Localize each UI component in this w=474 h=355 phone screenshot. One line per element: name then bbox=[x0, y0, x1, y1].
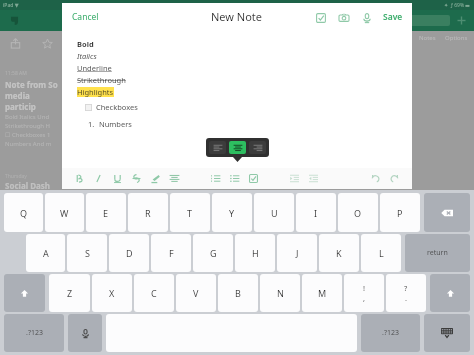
button[interactable]: I bbox=[296, 193, 336, 232]
button[interactable]: Checklist bbox=[244, 168, 263, 189]
button[interactable]: Outdent bbox=[304, 168, 323, 189]
staticText: Z bbox=[67, 287, 73, 299]
staticText: , bbox=[363, 293, 366, 303]
button[interactable]: Numbered list bbox=[206, 168, 225, 189]
staticText: G bbox=[210, 247, 217, 259]
button[interactable]: G bbox=[193, 234, 233, 272]
staticText: U bbox=[271, 207, 278, 219]
button[interactable]: Y bbox=[212, 193, 252, 232]
staticText: ☐ Checkboxes 1 bbox=[5, 131, 51, 139]
button[interactable]: Bold bbox=[70, 168, 89, 189]
button[interactable]: Strikethrough bbox=[127, 168, 146, 189]
button[interactable]: Z bbox=[49, 274, 90, 312]
button[interactable]: Checkbox bbox=[85, 104, 92, 111]
button[interactable]: New note bbox=[456, 15, 467, 26]
staticText: ! bbox=[363, 283, 366, 293]
staticText: Highlights bbox=[77, 87, 114, 97]
staticText: P bbox=[397, 207, 403, 219]
button[interactable]: Align center bbox=[229, 141, 246, 154]
staticText: V bbox=[193, 287, 199, 299]
staticText: Note from So bbox=[5, 79, 58, 90]
staticText: L bbox=[379, 247, 384, 259]
staticText: And more! bbox=[213, 142, 248, 152]
button[interactable]: Audio bbox=[360, 11, 373, 24]
button[interactable]: X bbox=[92, 274, 132, 312]
staticText: D bbox=[126, 247, 133, 259]
button[interactable]: C bbox=[134, 274, 174, 312]
staticText: Save bbox=[383, 11, 403, 23]
button[interactable]: Return bbox=[405, 234, 470, 272]
staticText: Bold bbox=[77, 39, 94, 49]
staticText: Strikethrough H bbox=[5, 122, 51, 130]
staticText: I bbox=[314, 207, 318, 219]
button[interactable]: Indent bbox=[285, 168, 304, 189]
button[interactable]: Alignment bbox=[165, 168, 184, 189]
staticText: Numbers bbox=[99, 119, 132, 129]
button[interactable]: Redo bbox=[385, 168, 404, 189]
button[interactable]: Numbers bbox=[4, 314, 64, 352]
staticText: O bbox=[354, 207, 362, 219]
staticText: K bbox=[336, 247, 342, 259]
staticText: Strikethrough bbox=[77, 75, 126, 85]
button[interactable]: Numbers bbox=[361, 314, 420, 352]
button[interactable]: L bbox=[361, 234, 401, 272]
button[interactable]: Underline bbox=[108, 168, 127, 189]
button[interactable]: B bbox=[218, 274, 258, 312]
button[interactable]: ! bbox=[344, 274, 384, 312]
button[interactable]: Backspace bbox=[424, 193, 470, 232]
button[interactable]: U bbox=[254, 193, 294, 232]
button[interactable]: Q bbox=[4, 193, 43, 232]
staticText: Notes bbox=[419, 34, 436, 42]
staticText: .?123 bbox=[26, 328, 43, 338]
button[interactable]: N bbox=[260, 274, 300, 312]
staticText: 11:58 AM bbox=[5, 70, 27, 77]
button[interactable]: ? bbox=[386, 274, 426, 312]
button[interactable]: Shift bbox=[430, 274, 470, 312]
staticText: M bbox=[318, 287, 327, 299]
button[interactable]: Italic bbox=[89, 168, 108, 189]
staticText: media particip bbox=[5, 90, 62, 112]
staticText: R bbox=[145, 207, 151, 219]
staticText: odcasting? bbox=[68, 105, 101, 114]
button[interactable]: Bulleted list bbox=[225, 168, 244, 189]
button[interactable]: Save bbox=[380, 8, 406, 26]
button[interactable]: Highlight bbox=[146, 168, 165, 189]
staticText: B bbox=[235, 287, 241, 299]
button[interactable]: Align left bbox=[209, 141, 226, 154]
button[interactable]: D bbox=[109, 234, 149, 272]
button[interactable]: A bbox=[26, 234, 65, 272]
button[interactable]: Shift bbox=[4, 274, 45, 312]
button[interactable]: V bbox=[176, 274, 216, 312]
button[interactable]: Camera bbox=[337, 11, 350, 24]
button[interactable]: O bbox=[338, 193, 378, 232]
button[interactable]: Cancel bbox=[69, 8, 102, 26]
staticText: ur podcast bbox=[68, 115, 101, 124]
button[interactable]: Checklist bbox=[314, 11, 327, 24]
button[interactable]: Dictation bbox=[68, 314, 102, 352]
button[interactable]: Hide keyboard bbox=[424, 314, 470, 352]
staticText: T bbox=[187, 207, 193, 219]
staticText: return bbox=[427, 248, 448, 258]
button[interactable]: E bbox=[86, 193, 126, 232]
staticText: A bbox=[43, 247, 49, 259]
button[interactable]: R bbox=[128, 193, 168, 232]
staticText: odcast bbox=[68, 68, 98, 80]
button[interactable]: Align right bbox=[249, 141, 266, 154]
button[interactable]: M bbox=[302, 274, 342, 312]
button[interactable]: F bbox=[151, 234, 191, 272]
button[interactable]: K bbox=[319, 234, 359, 272]
button[interactable]: Undo bbox=[366, 168, 385, 189]
button[interactable]: H bbox=[235, 234, 275, 272]
staticText: N bbox=[277, 287, 284, 299]
staticText: W bbox=[60, 207, 69, 219]
staticText: rs are my bbox=[68, 85, 97, 94]
button[interactable]: P bbox=[380, 193, 420, 232]
staticText: F bbox=[169, 247, 174, 259]
button[interactable]: S bbox=[67, 234, 107, 272]
button[interactable]: T bbox=[170, 193, 210, 232]
staticText: H bbox=[252, 247, 259, 259]
button[interactable]: J bbox=[277, 234, 317, 272]
staticText: Underline bbox=[77, 63, 112, 73]
button[interactable]: W bbox=[45, 193, 84, 232]
